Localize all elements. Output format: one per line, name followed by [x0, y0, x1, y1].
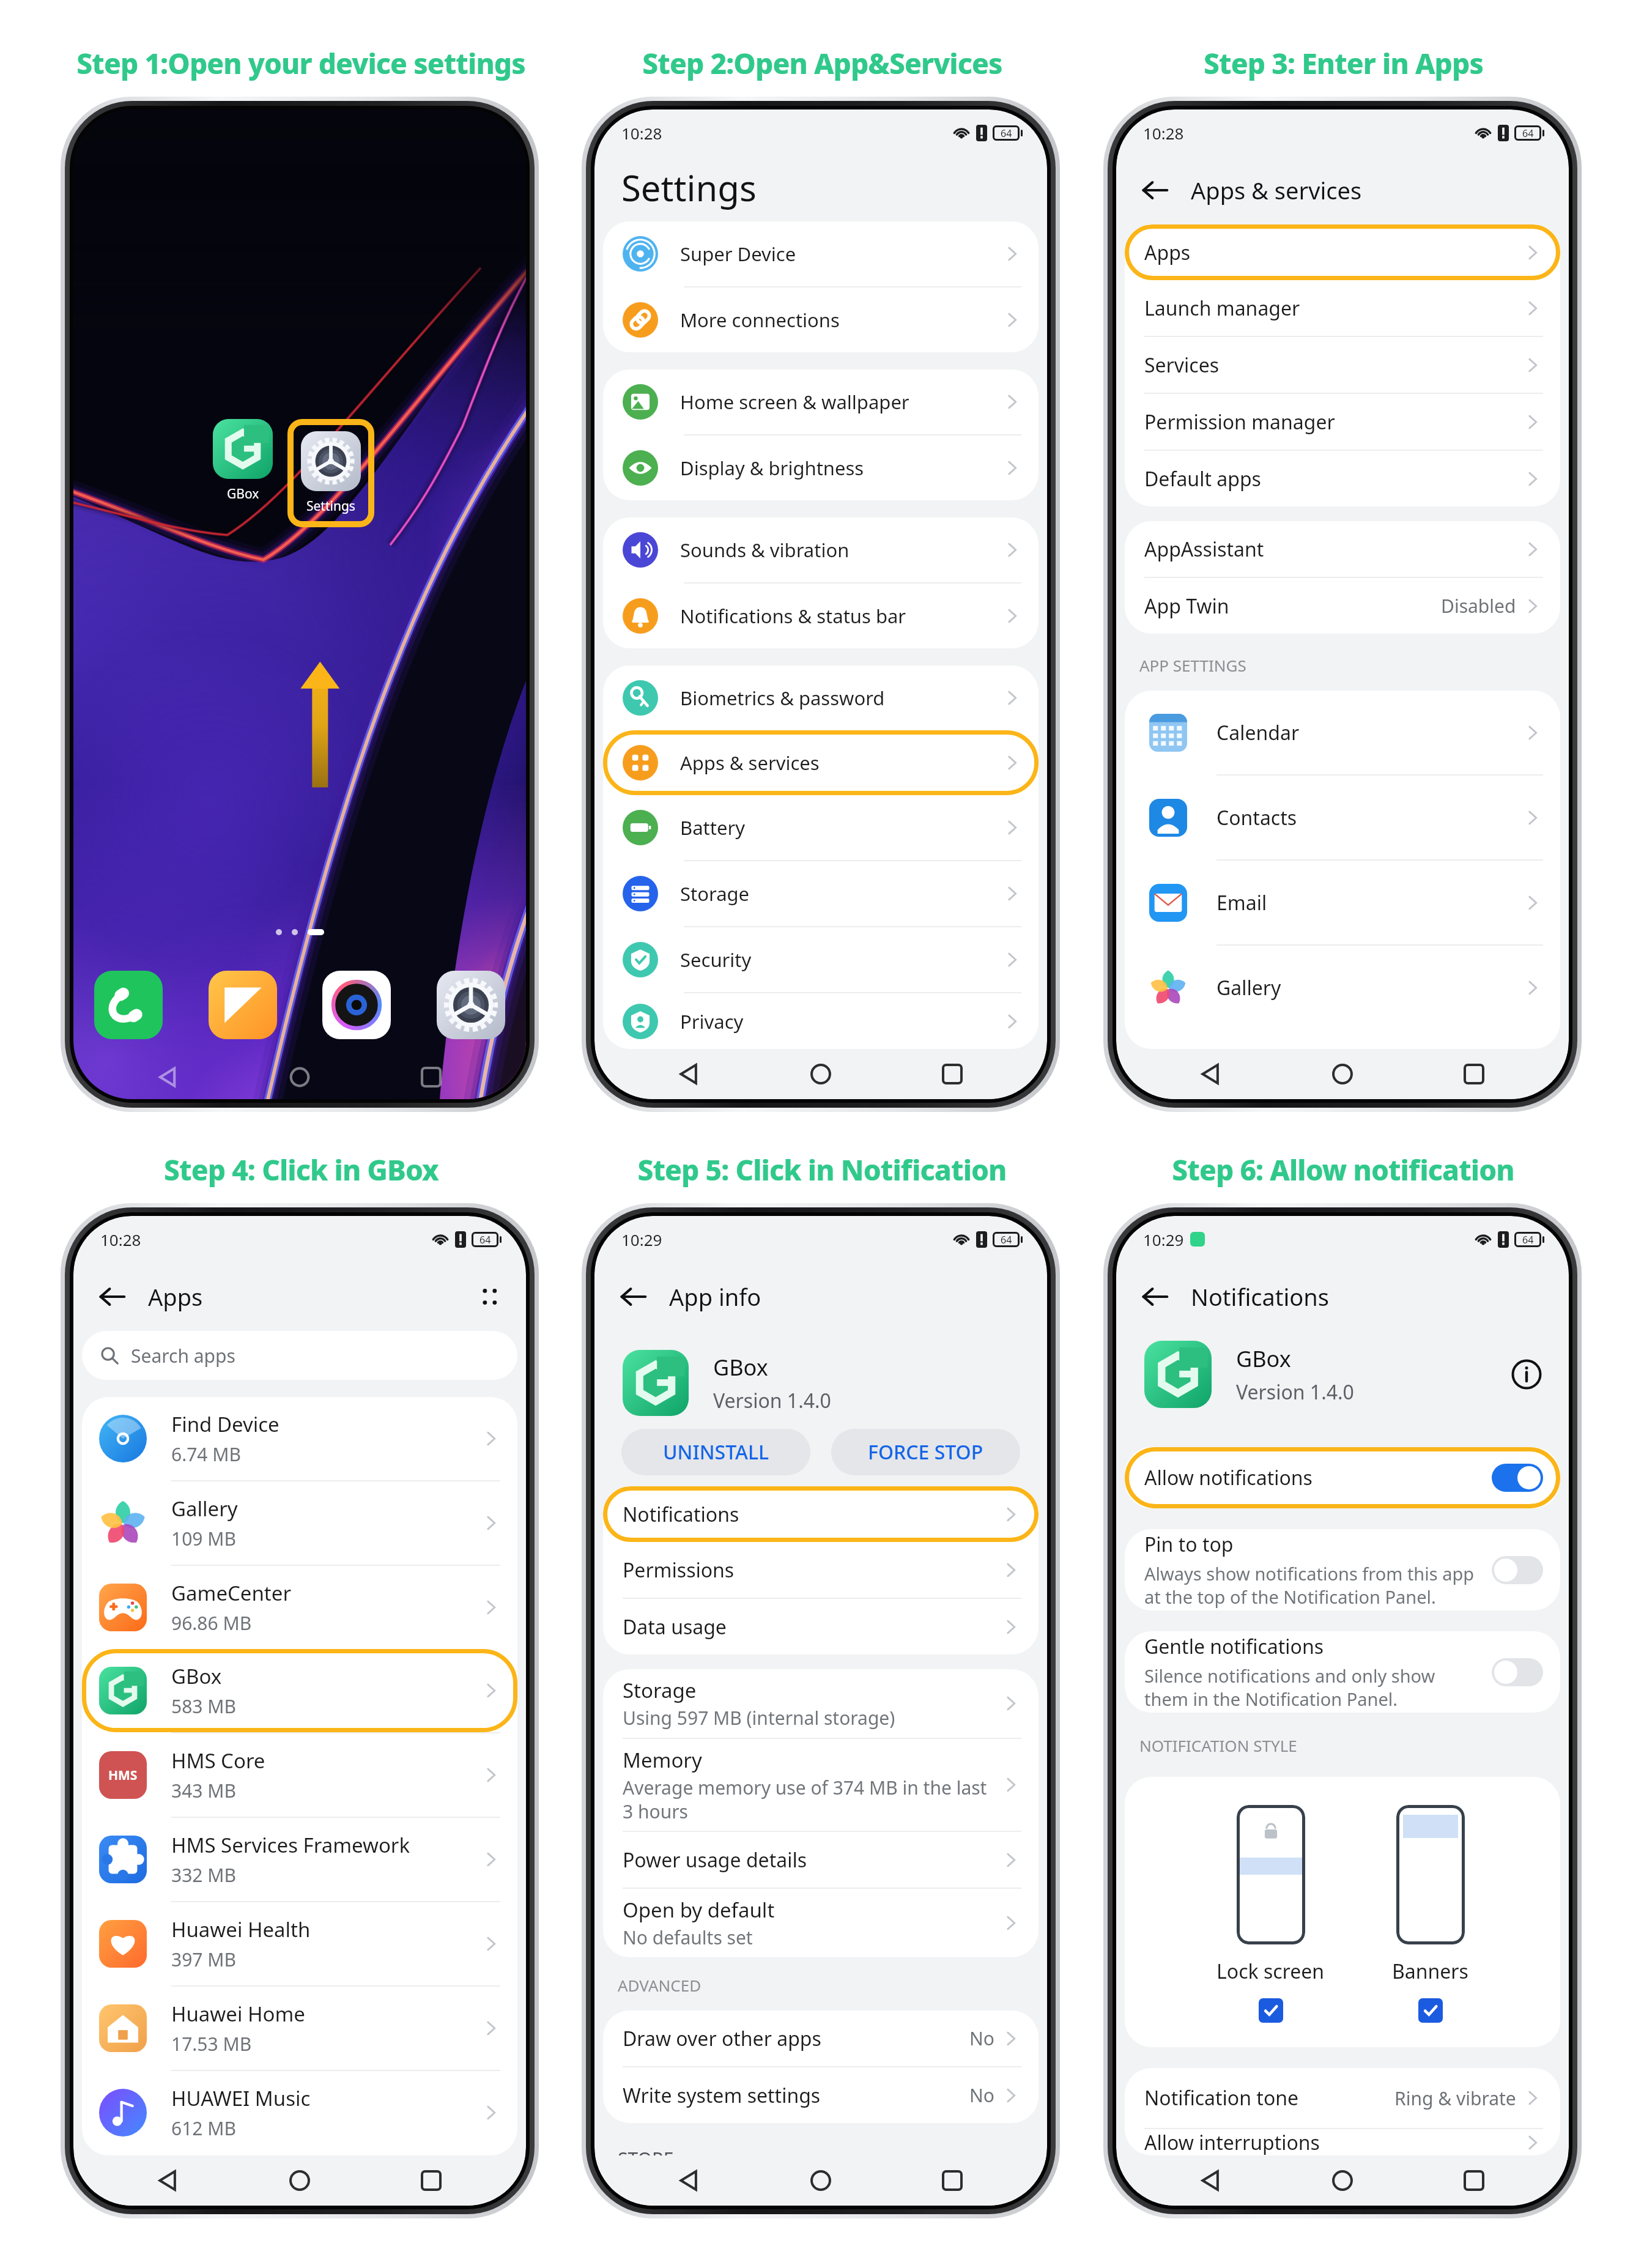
- button[interactable]: Contacts: [1125, 776, 1560, 859]
- button[interactable]: Recent apps: [1437, 1049, 1511, 1099]
- button[interactable]: Calendar: [1125, 691, 1560, 774]
- button[interactable]: Biometrics & password: [603, 665, 1039, 730]
- button[interactable]: Back: [619, 1283, 647, 1311]
- staticText: 10:29: [621, 1229, 662, 1250]
- button[interactable]: Pin to top: [1125, 1529, 1560, 1610]
- button[interactable]: HMS: [82, 1733, 517, 1817]
- button[interactable]: Services: [1125, 337, 1560, 393]
- button[interactable]: Apps & services: [603, 730, 1039, 795]
- button[interactable]: Gallery: [82, 1481, 517, 1565]
- button[interactable]: [1492, 1556, 1543, 1584]
- button[interactable]: Allow interruptions: [1125, 2129, 1560, 2155]
- button[interactable]: Back: [131, 1055, 205, 1099]
- button[interactable]: Huawei Health: [82, 1902, 517, 1985]
- staticText: Power usage details: [623, 1847, 807, 1873]
- button[interactable]: App info: [1511, 1359, 1542, 1390]
- button[interactable]: Super Device: [603, 221, 1039, 286]
- button[interactable]: Email: [1125, 861, 1560, 944]
- button[interactable]: Home: [263, 1055, 336, 1099]
- button[interactable]: Find Device: [82, 1397, 517, 1480]
- button[interactable]: Notifications & status bar: [603, 584, 1039, 648]
- button[interactable]: Write system settings: [603, 2067, 1039, 2123]
- button[interactable]: Storage: [603, 861, 1039, 926]
- button[interactable]: More options: [477, 1284, 502, 1309]
- button[interactable]: Messages: [209, 971, 277, 1039]
- button[interactable]: Home: [784, 1049, 857, 1099]
- button[interactable]: [1492, 1658, 1543, 1686]
- button[interactable]: Gallery: [1125, 946, 1560, 1029]
- button[interactable]: Back: [653, 1049, 726, 1099]
- button[interactable]: Back: [131, 2155, 205, 2206]
- button[interactable]: Notification tone: [1125, 2068, 1560, 2128]
- staticText: 96.86 MB: [171, 1610, 252, 1636]
- staticText: Privacy: [680, 1009, 744, 1034]
- button[interactable]: Recent apps: [394, 2155, 468, 2206]
- button[interactable]: GameCenter: [82, 1566, 517, 1649]
- button[interactable]: HUAWEI Music: [82, 2071, 517, 2154]
- staticText: Version 1.4.0: [1236, 1379, 1354, 1406]
- button[interactable]: Battery: [603, 795, 1039, 860]
- button[interactable]: Recent apps: [916, 2155, 989, 2206]
- button[interactable]: Recent apps: [916, 1049, 989, 1099]
- button[interactable]: Home: [784, 2155, 857, 2206]
- button[interactable]: Recent apps: [394, 1055, 468, 1099]
- button[interactable]: Permissions: [603, 1542, 1039, 1598]
- button[interactable]: Launch manager: [1125, 280, 1560, 336]
- staticText: Silence notifications and only show them…: [1144, 1664, 1479, 1711]
- staticText: App info: [669, 1281, 761, 1313]
- button[interactable]: Sounds & vibration: [603, 517, 1039, 582]
- button[interactable]: More connections: [603, 287, 1039, 352]
- staticText: Data usage: [623, 1614, 727, 1640]
- button[interactable]: Security: [603, 927, 1039, 992]
- button[interactable]: Draw over other apps: [603, 2010, 1039, 2066]
- button[interactable]: Home: [1306, 1049, 1379, 1099]
- button[interactable]: Back: [1141, 1283, 1169, 1311]
- button[interactable]: Memory: [603, 1739, 1039, 1831]
- button[interactable]: Open by default: [603, 1889, 1039, 1957]
- button[interactable]: Default apps: [1125, 451, 1560, 506]
- button[interactable]: [1418, 1998, 1443, 2023]
- button[interactable]: Back: [1174, 1049, 1248, 1099]
- staticText: Banners: [1392, 1958, 1468, 1985]
- button[interactable]: Back: [1141, 176, 1169, 204]
- staticText: Launch manager: [1144, 295, 1300, 322]
- button[interactable]: Back: [653, 2155, 726, 2206]
- staticText: 64: [480, 1233, 491, 1247]
- button[interactable]: App Twin: [1125, 578, 1560, 634]
- button[interactable]: UNINSTALL: [621, 1429, 810, 1475]
- staticText: App Twin: [1144, 593, 1229, 620]
- button[interactable]: AppAssistant: [1125, 521, 1560, 577]
- staticText: 343 MB: [171, 1778, 236, 1803]
- button[interactable]: Back: [98, 1283, 126, 1311]
- button[interactable]: Home: [263, 2155, 336, 2206]
- button[interactable]: Search apps: [82, 1331, 517, 1380]
- button[interactable]: Phone: [94, 971, 163, 1039]
- button[interactable]: Settings: [301, 431, 361, 515]
- button[interactable]: FORCE STOP: [831, 1429, 1020, 1475]
- button[interactable]: Allow notifications: [1125, 1447, 1560, 1508]
- button[interactable]: Gentle notifications: [1125, 1631, 1560, 1713]
- button[interactable]: GBox: [213, 419, 273, 503]
- button[interactable]: Storage: [603, 1669, 1039, 1738]
- staticText: 583 MB: [171, 1694, 236, 1719]
- button[interactable]: Home screen & wallpaper: [603, 369, 1039, 434]
- button[interactable]: Camera: [322, 971, 391, 1039]
- button[interactable]: HMS Services Framework: [82, 1818, 517, 1901]
- button[interactable]: Privacy: [603, 993, 1039, 1049]
- staticText: Notifications: [623, 1501, 739, 1528]
- button[interactable]: Apps: [1125, 224, 1560, 280]
- button[interactable]: Notifications: [603, 1486, 1039, 1542]
- button[interactable]: Huawei Home: [82, 1987, 517, 2070]
- button[interactable]: Permission manager: [1125, 394, 1560, 450]
- button[interactable]: GBox: [82, 1649, 517, 1732]
- button[interactable]: Settings: [437, 971, 505, 1039]
- button[interactable]: Home: [1306, 2155, 1379, 2206]
- button[interactable]: [1492, 1464, 1543, 1492]
- staticText: Allow interruptions: [1144, 2129, 1320, 2155]
- button[interactable]: Data usage: [603, 1599, 1039, 1655]
- button[interactable]: Display & brightness: [603, 435, 1039, 500]
- button[interactable]: Recent apps: [1437, 2155, 1511, 2206]
- button[interactable]: [1259, 1998, 1283, 2023]
- button[interactable]: Power usage details: [603, 1832, 1039, 1888]
- button[interactable]: Back: [1174, 2155, 1248, 2206]
